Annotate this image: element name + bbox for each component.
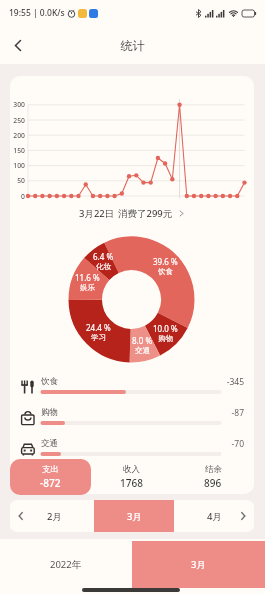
staticText: 896 [204,476,222,490]
staticText: 娱乐 [80,283,95,292]
button[interactable]: 3月 [132,541,265,588]
button[interactable]: 2022年 [0,541,132,588]
staticText: 24.4 % [86,322,111,333]
staticText: 购物 [158,334,173,343]
button[interactable]: Previous month [10,500,32,532]
staticText: 结余 [205,464,222,475]
staticText: 饮食 [158,267,173,276]
staticText: 学习 [91,333,106,342]
staticText: 4月 [207,510,222,523]
staticText: 统计 [0,38,265,53]
staticText: 交通 [41,438,58,449]
button[interactable]: 结余 [172,459,254,495]
staticText: 10.0 % [153,323,178,334]
button[interactable]: 支出 [10,459,91,495]
button[interactable]: 4月 [174,500,254,532]
staticText: -345 [180,376,244,388]
button[interactable]: Next month [232,500,254,532]
button[interactable]: Back [6,33,30,57]
button[interactable]: 购物 [10,402,254,432]
button[interactable]: 交通 [10,433,254,463]
staticText: 消费了299元 [118,207,173,220]
staticText: 1768 [120,476,143,490]
staticText: 100 [10,161,25,170]
staticText: 6.4 % [93,251,114,262]
staticText: 150 [10,146,25,155]
button[interactable]: 饮食 [10,371,254,401]
staticText: 19:55 | 0.0K/s [9,7,65,19]
staticText: 3月22日 [79,207,115,220]
staticText: 50 [10,176,25,185]
staticText: -87 [180,407,244,419]
staticText: -872 [40,476,61,490]
button[interactable]: 2月 [14,500,94,532]
staticText: 饮食 [41,376,58,387]
button[interactable]: 3月22日 [10,204,254,222]
staticText: 3月 [191,558,206,571]
staticText: 2月 [47,510,62,523]
staticText: 39.6 % [153,256,178,267]
staticText: 收入 [123,464,140,475]
staticText: 支出 [42,464,59,475]
staticText: 购物 [41,407,58,418]
staticText: -70 [180,438,244,450]
staticText: 200 [10,131,25,140]
staticText: 250 [10,116,25,125]
staticText: 2022年 [50,558,82,571]
staticText: 0 [10,192,25,201]
button[interactable]: 3月 [94,500,174,532]
staticText: 8.0 % [132,335,153,346]
staticText: 300 [10,100,25,109]
staticText: 化妆 [96,262,111,271]
staticText: 3月 [127,510,142,523]
staticText: 交通 [135,346,150,355]
staticText: 11.6 % [75,272,100,283]
button[interactable]: 收入 [91,459,172,495]
